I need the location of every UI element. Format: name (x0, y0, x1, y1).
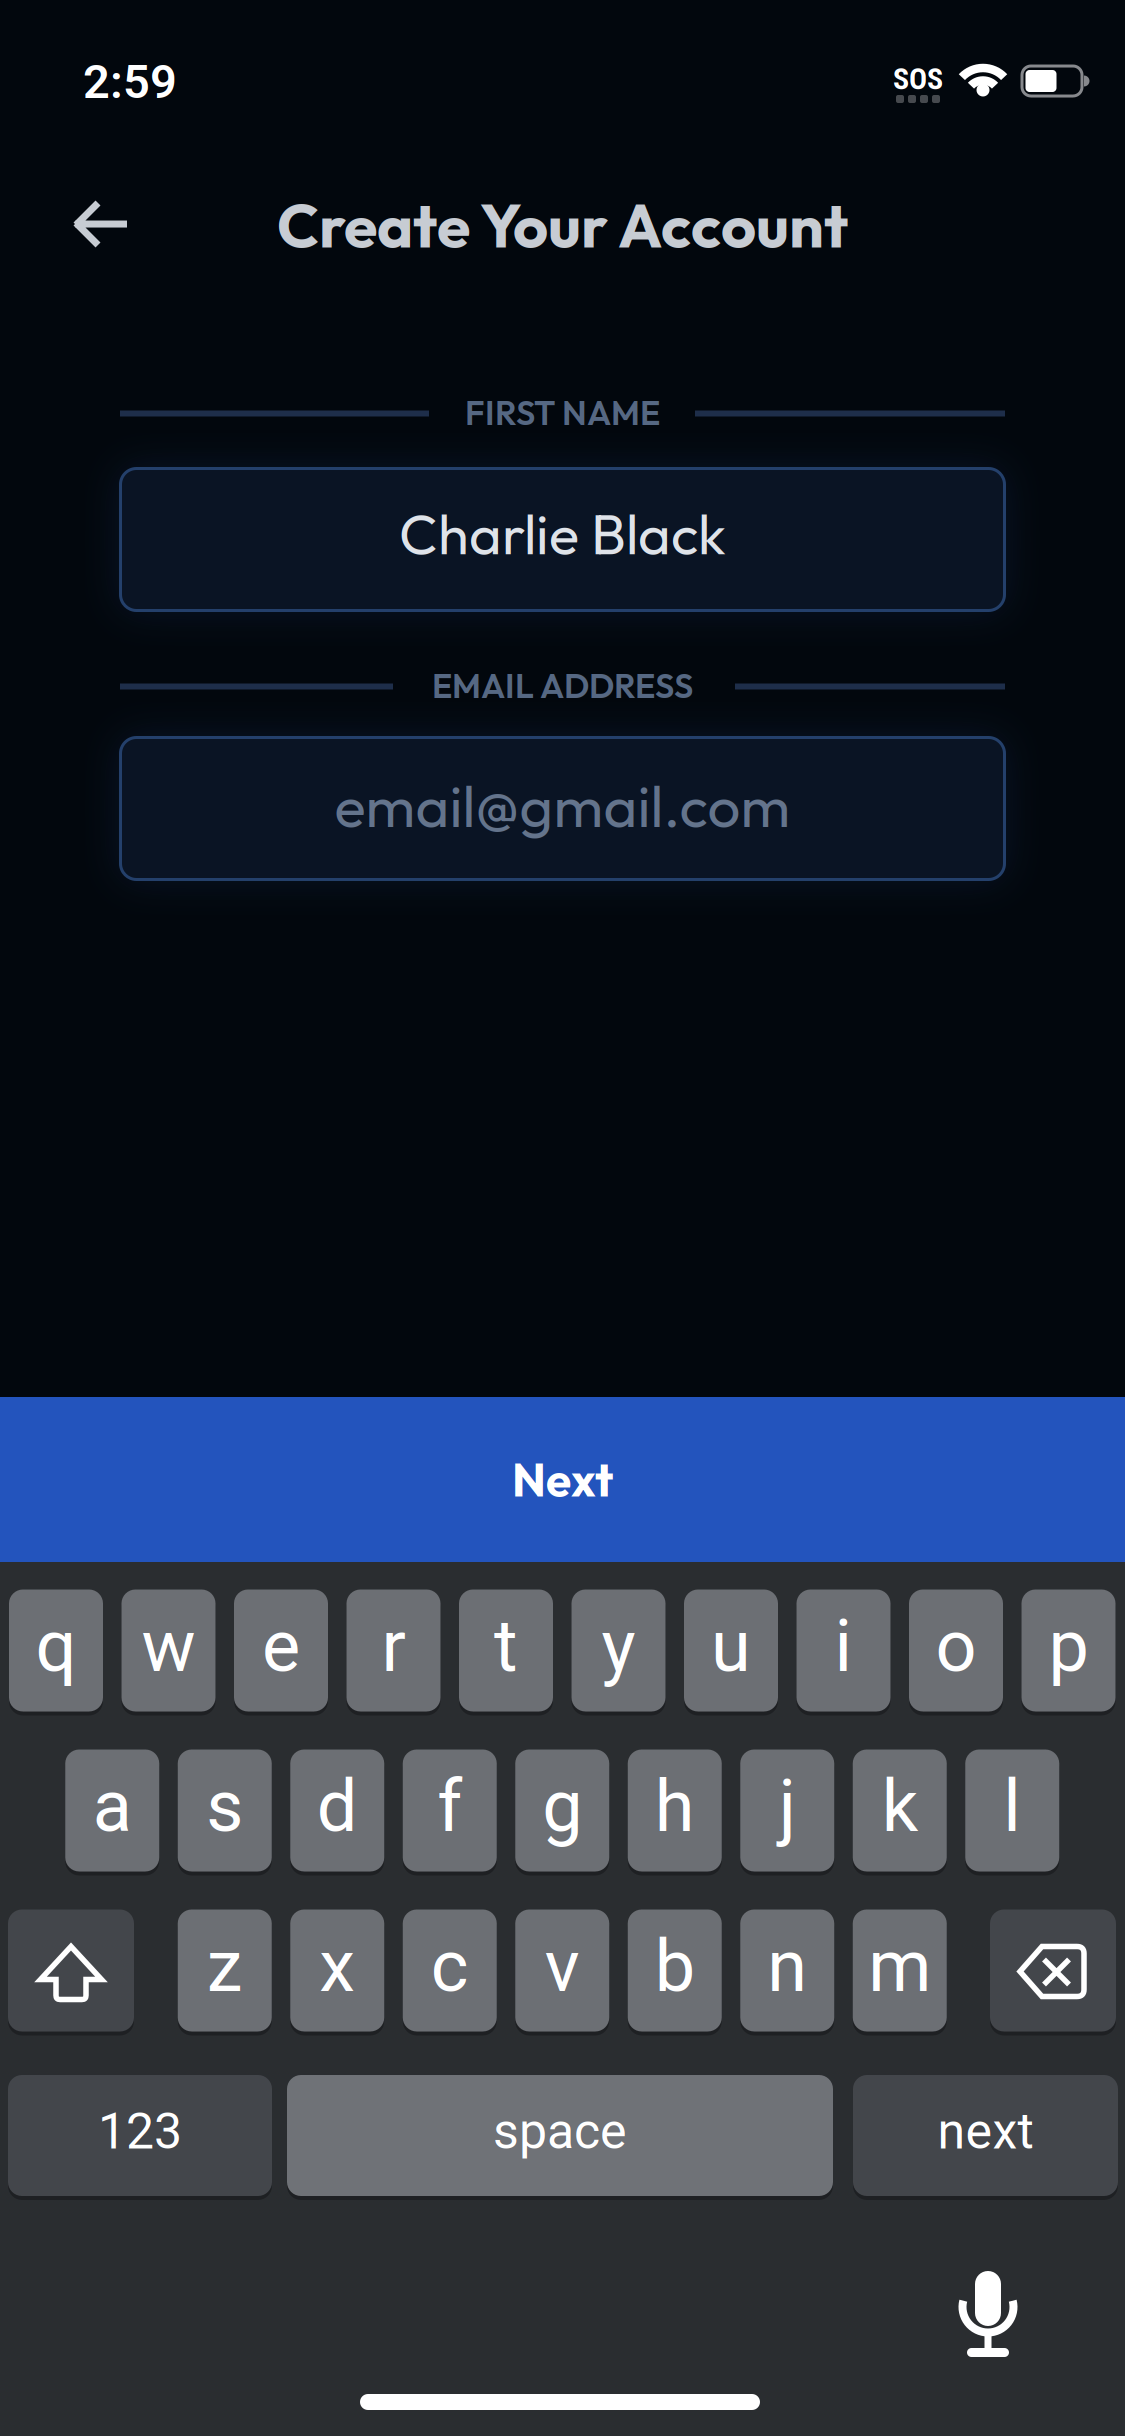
staticText: u (711, 1604, 751, 1689)
button[interactable]: a (65, 1749, 159, 1871)
button[interactable]: p (1021, 1589, 1115, 1711)
staticText: w (141, 1604, 195, 1689)
staticText: 2:59 (83, 54, 177, 110)
button[interactable]: t (459, 1589, 553, 1711)
staticText: next (937, 2102, 1033, 2161)
button[interactable]: Shift (8, 1909, 134, 2031)
staticText: EMAIL ADDRESS (432, 664, 693, 707)
button[interactable]: e (234, 1589, 328, 1711)
staticText: h (655, 1764, 695, 1849)
staticText: o (935, 1604, 976, 1689)
staticText: v (545, 1924, 580, 2009)
staticText: g (542, 1764, 582, 1849)
button[interactable]: m (853, 1909, 947, 2031)
staticText: l (1003, 1764, 1021, 1849)
button[interactable]: x (290, 1909, 384, 2031)
button[interactable]: f (403, 1749, 497, 1871)
staticText: f (437, 1764, 462, 1849)
button[interactable]: n (740, 1909, 834, 2031)
staticText: m (868, 1924, 931, 2009)
button[interactable]: 123 (8, 2075, 272, 2196)
staticText: a (93, 1764, 132, 1849)
staticText: i (834, 1604, 852, 1689)
staticText: n (767, 1924, 807, 2009)
staticText: Next (512, 1450, 613, 1508)
staticText: c (431, 1924, 469, 2009)
button[interactable]: d (290, 1749, 384, 1871)
button[interactable]: c (403, 1909, 497, 2031)
button[interactable]: z (178, 1909, 272, 2031)
button[interactable]: r (346, 1589, 440, 1711)
staticText: j (779, 1764, 796, 1849)
staticText: d (317, 1764, 358, 1849)
button[interactable]: u (684, 1589, 778, 1711)
staticText: q (35, 1604, 76, 1689)
button[interactable]: Back (61, 184, 141, 264)
button[interactable]: l (965, 1749, 1059, 1871)
staticText: x (319, 1924, 355, 2009)
staticText: p (1048, 1604, 1088, 1689)
button[interactable]: space (287, 2075, 833, 2196)
staticText: SOS (893, 61, 943, 97)
button[interactable]: o (909, 1589, 1003, 1711)
button[interactable]: Delete (990, 1909, 1116, 2031)
button[interactable]: Email Address (120, 737, 1004, 879)
staticText: k (882, 1764, 918, 1849)
button[interactable]: h (628, 1749, 722, 1871)
button[interactable]: i (796, 1589, 890, 1711)
button[interactable]: v (515, 1909, 609, 2031)
staticText: s (206, 1764, 243, 1849)
staticText: space (493, 2102, 627, 2161)
button[interactable]: First Name (120, 468, 1004, 610)
staticText: Charlie Black (399, 498, 726, 569)
button[interactable]: y (571, 1589, 665, 1711)
staticText: t (494, 1604, 518, 1689)
staticText: email@gmail.com (334, 769, 790, 842)
button[interactable]: next (853, 2075, 1118, 2196)
button[interactable]: Next (0, 1397, 1125, 1562)
staticText: FIRST NAME (465, 391, 660, 434)
button[interactable]: j (740, 1749, 834, 1871)
staticText: r (381, 1604, 405, 1689)
button[interactable]: w (121, 1589, 215, 1711)
button[interactable]: g (515, 1749, 609, 1871)
button[interactable]: Dictate (943, 2258, 1033, 2368)
staticText: e (262, 1604, 300, 1689)
staticText: z (207, 1924, 243, 2009)
staticText: b (655, 1924, 695, 2009)
staticText: Create Your Account (277, 187, 848, 263)
button[interactable]: k (853, 1749, 947, 1871)
button[interactable]: b (628, 1909, 722, 2031)
staticText: 123 (98, 2102, 182, 2161)
button[interactable]: s (178, 1749, 272, 1871)
button[interactable]: q (9, 1589, 103, 1711)
staticText: y (601, 1604, 635, 1689)
